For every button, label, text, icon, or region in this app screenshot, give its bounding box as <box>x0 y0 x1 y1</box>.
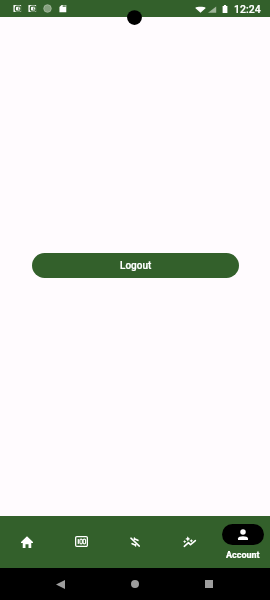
button[interactable]: Home <box>120 574 150 594</box>
button[interactable]: Home <box>0 516 54 568</box>
button[interactable]: Logout <box>32 253 239 278</box>
button[interactable]: Expenses <box>108 516 162 568</box>
button[interactable]: Budget <box>54 516 108 568</box>
staticText: Account <box>226 550 260 561</box>
staticText: Logout <box>120 260 152 272</box>
staticText: 12:24 <box>234 3 261 15</box>
button[interactable]: Recents <box>194 574 224 594</box>
button[interactable]: Insights <box>162 516 216 568</box>
button[interactable]: Back <box>45 574 75 594</box>
button[interactable]: Account <box>216 516 270 568</box>
